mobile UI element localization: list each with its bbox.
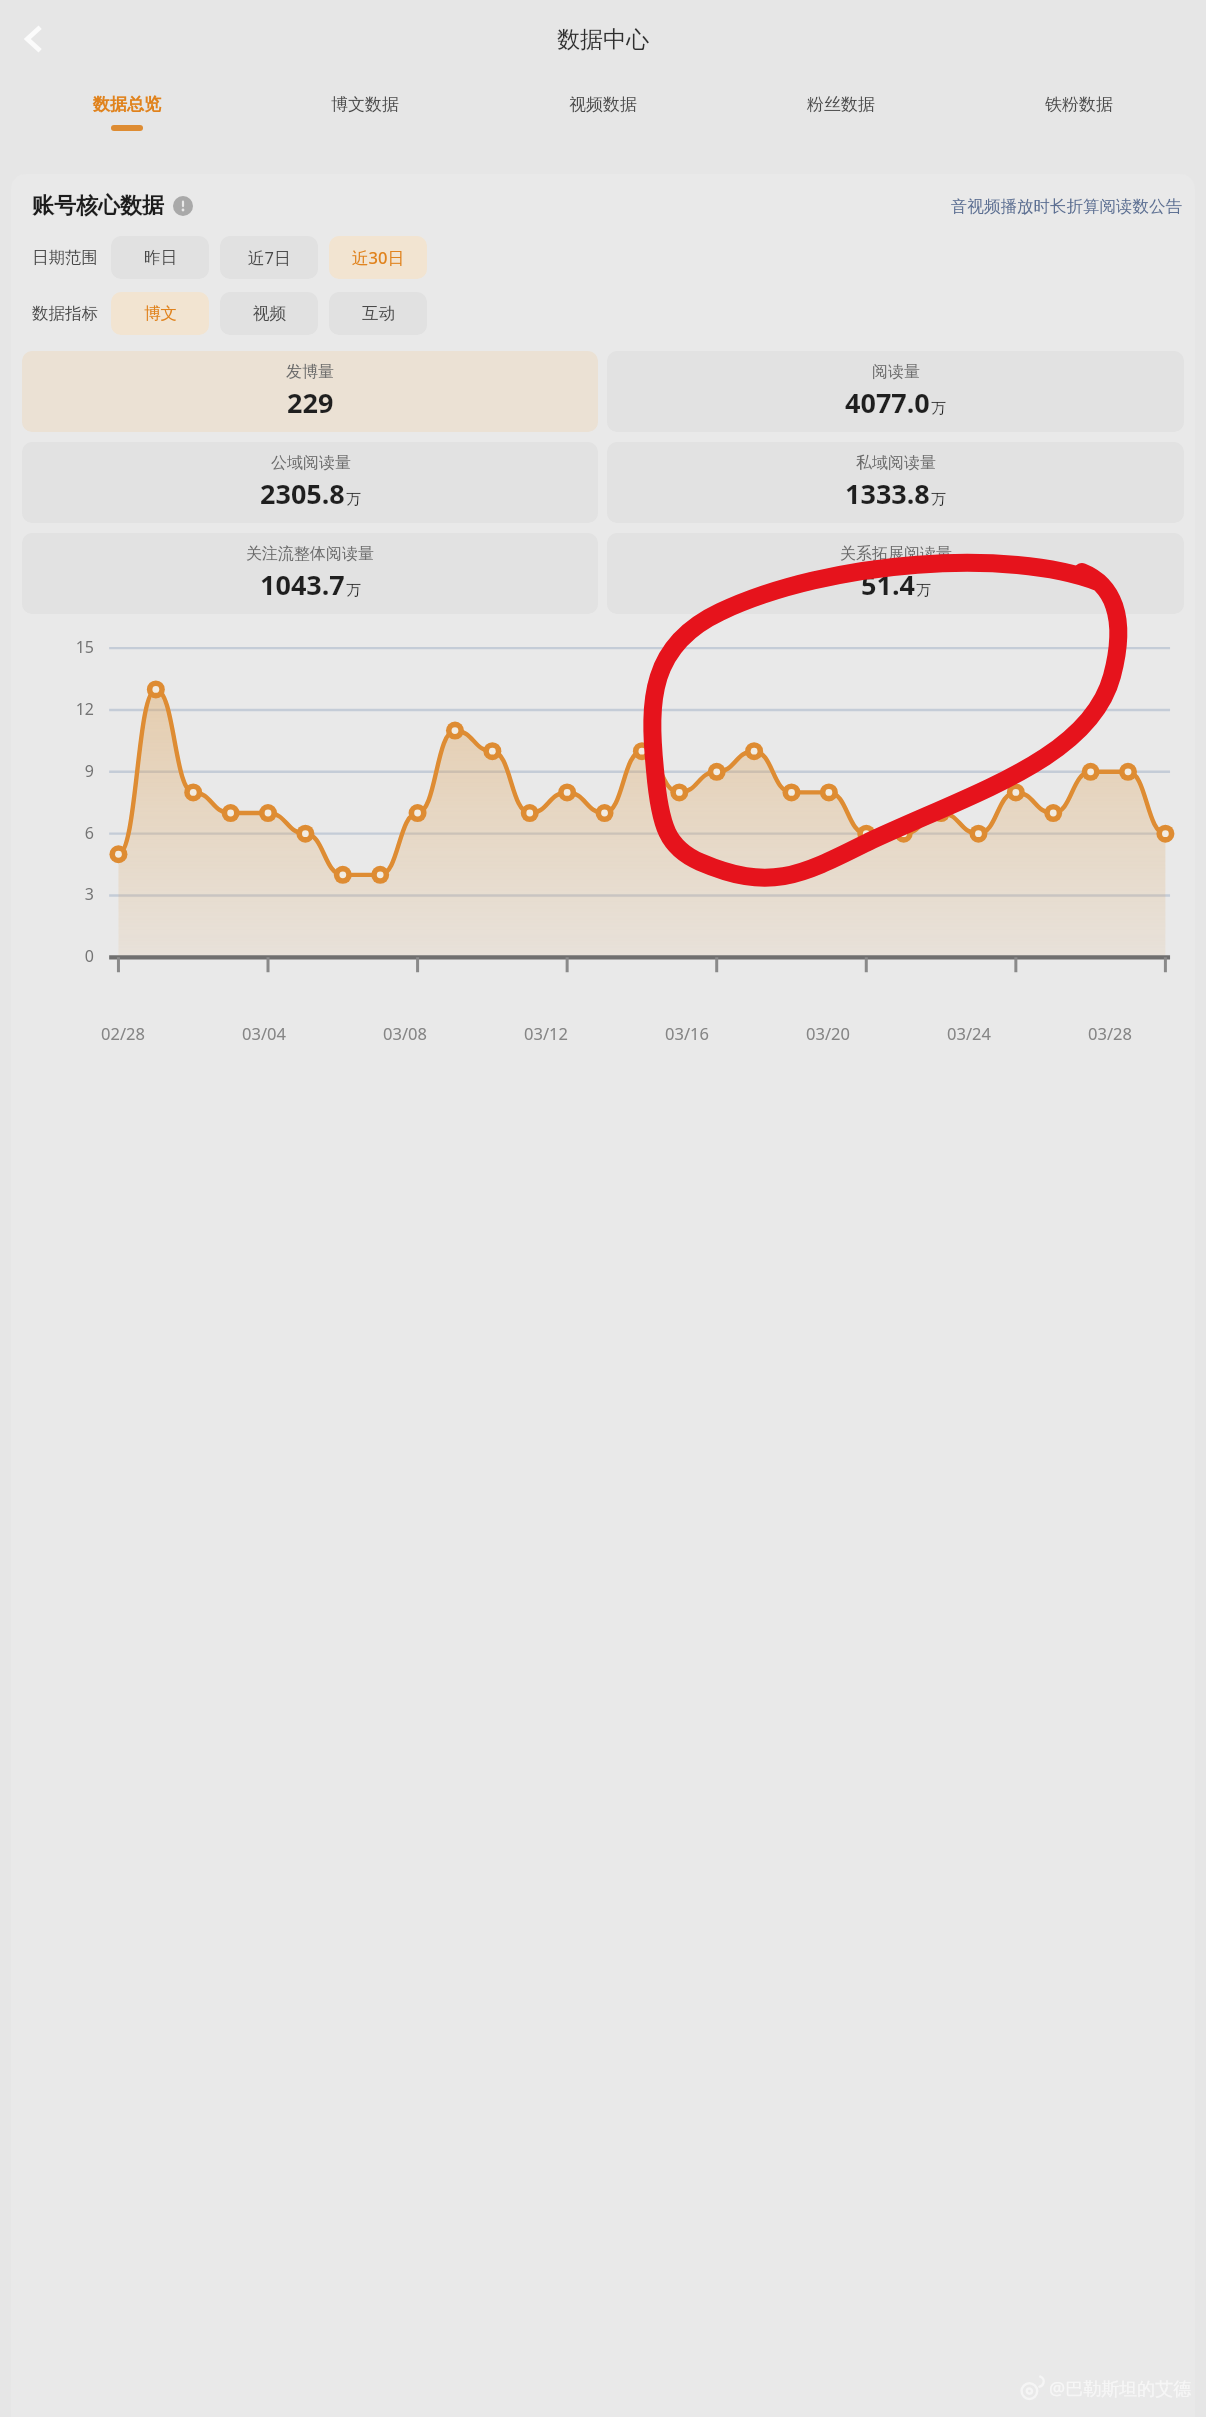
staticText: 昨日 [144,247,177,268]
staticText: 03/04 [242,1022,286,1044]
staticText: 博文 [144,303,177,324]
button[interactable]: 近7日 [220,236,318,279]
staticText: 03/16 [665,1022,709,1044]
staticText: 近7日 [248,246,291,269]
staticText: 关注流整体阅读量 [246,544,374,564]
button[interactable]: 博文 [111,292,209,335]
staticText: 数据指标 [32,303,98,324]
button[interactable]: 私域阅读量 [607,442,1184,523]
staticText: 03/12 [524,1022,568,1044]
button[interactable]: Info [173,196,193,216]
staticText: 03/24 [947,1022,991,1044]
staticText: 03/08 [383,1022,427,1044]
staticText: 0 [22,945,94,967]
staticText: 铁粉数据 [1045,94,1113,115]
staticText: 229 [287,384,334,421]
staticText: 万 [346,581,361,600]
staticText: 1333.8 [845,475,930,512]
button[interactable]: 关注流整体阅读量 [22,533,598,614]
staticText: 4077.0 [845,384,930,421]
staticText: 03/20 [806,1022,850,1044]
staticText: 视频 [253,303,286,324]
button[interactable]: 阅读量 [607,351,1184,432]
staticText: 9 [22,760,94,782]
button[interactable]: 博文数据 [246,78,484,152]
button[interactable]: 公域阅读量 [22,442,598,523]
button[interactable]: 视频数据 [484,78,722,152]
staticText: 阅读量 [872,362,920,382]
staticText: @巴勒斯坦的艾德 [1049,2376,1192,2401]
button[interactable]: 发博量 [22,351,598,432]
button[interactable]: 近30日 [329,236,427,279]
staticText: 15 [22,636,94,658]
staticText: 6 [22,822,94,844]
staticText: 账号核心数据 [32,192,164,220]
staticText: 博文数据 [331,94,399,115]
button[interactable]: 昨日 [111,236,209,279]
button[interactable]: 数据总览 [8,78,246,152]
staticText: 02/28 [101,1022,145,1044]
staticText: 万 [931,490,946,509]
staticText: 1043.7 [260,566,345,603]
staticText: 关系拓展阅读量 [840,544,952,564]
staticText: 数据中心 [557,25,649,54]
staticText: 12 [22,698,94,720]
staticText: 日期范围 [32,247,98,268]
staticText: 3 [22,883,94,905]
staticText: 发博量 [286,362,334,382]
staticText: 公域阅读量 [271,453,351,473]
staticText: 粉丝数据 [807,94,875,115]
staticText: 视频数据 [569,94,637,115]
button[interactable]: 账号核心数据 [32,192,193,220]
button[interactable]: 铁粉数据 [960,78,1198,152]
staticText: 近30日 [352,246,404,269]
button[interactable]: 粉丝数据 [722,78,960,152]
staticText: 私域阅读量 [856,453,936,473]
staticText: 万 [346,490,361,509]
button[interactable]: 互动 [329,292,427,335]
button[interactable]: 关系拓展阅读量 [607,533,1184,614]
staticText: 数据总览 [93,94,161,115]
button[interactable]: Back [4,9,64,69]
staticText: 万 [931,399,946,418]
staticText: 互动 [362,303,395,324]
button[interactable]: 视频 [220,292,318,335]
staticText: 万 [916,581,931,600]
staticText: 03/28 [1088,1022,1132,1044]
staticText: 51.4 [861,566,915,603]
staticText: 2305.8 [260,475,345,512]
staticText: 音视频播放时长折算阅读数公告 [951,196,1182,217]
button[interactable]: 音视频播放时长折算阅读数公告 [951,196,1182,217]
